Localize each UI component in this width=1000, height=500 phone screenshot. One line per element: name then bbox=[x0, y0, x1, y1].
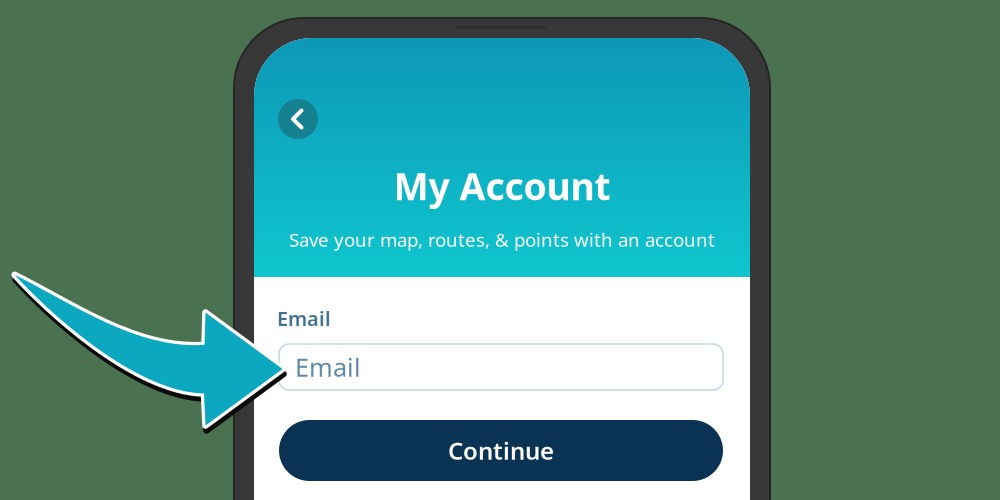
staticText: Email bbox=[277, 305, 331, 332]
staticText: Email bbox=[295, 350, 361, 384]
button[interactable]: Email address field bbox=[279, 344, 723, 390]
staticText: My Account bbox=[393, 161, 610, 211]
button[interactable]: Back bbox=[278, 99, 318, 139]
staticText: Continue bbox=[448, 435, 554, 466]
staticText: Save your map, routes, & points with an … bbox=[289, 227, 715, 252]
button[interactable]: Continue bbox=[279, 420, 723, 481]
